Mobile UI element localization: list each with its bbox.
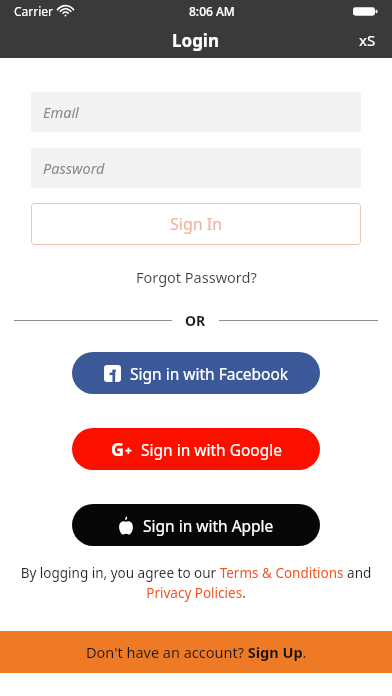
staticText: Don't have an account? Sign Up. [86,642,307,662]
staticText: Carrier [14,3,54,19]
staticText: Sign in with Apple [143,515,274,536]
button[interactable]: Forgot Password? [128,265,265,289]
button[interactable]: Password [31,148,361,188]
staticText: Sign in with Facebook [130,363,289,384]
button[interactable]: xS [355,26,380,54]
staticText: OR [185,311,206,330]
staticText: + [125,442,132,458]
staticText: Password [43,158,105,178]
button[interactable]: Sign in with Facebook [72,352,320,394]
staticText: Forgot Password? [136,267,257,287]
button[interactable]: Email [31,92,361,132]
button[interactable]: Don't have an account? Sign Up. [0,631,392,673]
staticText: xS [359,30,376,50]
staticText: G [111,437,125,462]
staticText: Email [43,102,79,122]
button[interactable]: G [72,428,320,470]
button[interactable]: Sign In [31,203,361,245]
staticText: Sign in with Google [141,439,282,460]
staticText: By logging in, you agree to our Terms & … [18,564,374,602]
staticText: 8:06 AM [189,3,235,19]
button[interactable]: Sign in with Apple [72,504,320,546]
staticText: Login [172,29,220,52]
staticText: Sign In [170,213,223,235]
